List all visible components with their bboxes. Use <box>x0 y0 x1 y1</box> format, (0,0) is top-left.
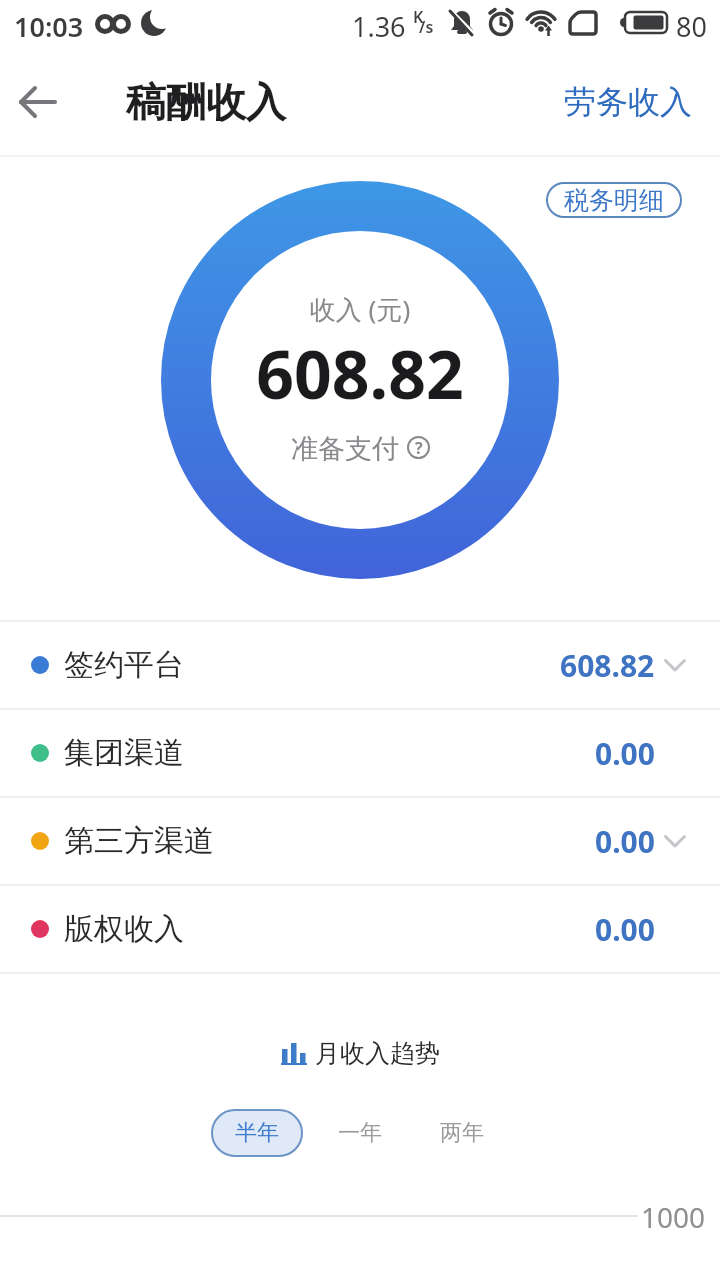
staticText: 半年 <box>235 1119 279 1147</box>
button[interactable]: 税务明细 <box>546 182 682 218</box>
button[interactable]: 签约平台 <box>0 622 720 708</box>
staticText: /s <box>419 16 434 38</box>
staticText: ? <box>415 437 423 459</box>
button[interactable]: 两年 <box>422 1109 502 1157</box>
staticText: 版权收入 <box>64 910 184 948</box>
staticText: 608.82 <box>0 328 720 418</box>
staticText: 0.00 <box>595 821 655 862</box>
staticText: 两年 <box>440 1119 484 1147</box>
staticText: 税务明细 <box>564 185 664 216</box>
staticText: 集团渠道 <box>64 734 184 772</box>
staticText: 劳务收入 <box>564 82 692 122</box>
staticText: 10:03 <box>14 8 84 45</box>
staticText: 80 <box>676 8 707 45</box>
button[interactable] <box>0 64 76 140</box>
staticText: 0.00 <box>595 733 655 774</box>
button[interactable]: 第三方渠道 <box>0 798 720 884</box>
button[interactable]: 一年 <box>320 1109 400 1157</box>
staticText: 签约平台 <box>64 646 184 684</box>
staticText: 准备支付 <box>291 429 407 466</box>
staticText: 收入 (元) <box>0 291 720 327</box>
button[interactable]: 版权收入 <box>0 886 720 972</box>
staticText: 一年 <box>338 1119 382 1147</box>
button[interactable]: 半年 <box>211 1109 303 1157</box>
staticText: 608.82 <box>560 645 655 686</box>
staticText: K <box>413 6 424 28</box>
staticText: 1.36 <box>352 8 406 45</box>
button[interactable]: 劳务收入 <box>564 82 692 122</box>
staticText: 0.00 <box>595 909 655 950</box>
staticText: 月收入趋势 <box>315 1038 440 1069</box>
staticText: 第三方渠道 <box>64 822 214 860</box>
staticText: 1000 <box>641 1198 706 1236</box>
staticText: 稿酬收入 <box>126 77 286 127</box>
button[interactable]: 集团渠道 <box>0 710 720 796</box>
